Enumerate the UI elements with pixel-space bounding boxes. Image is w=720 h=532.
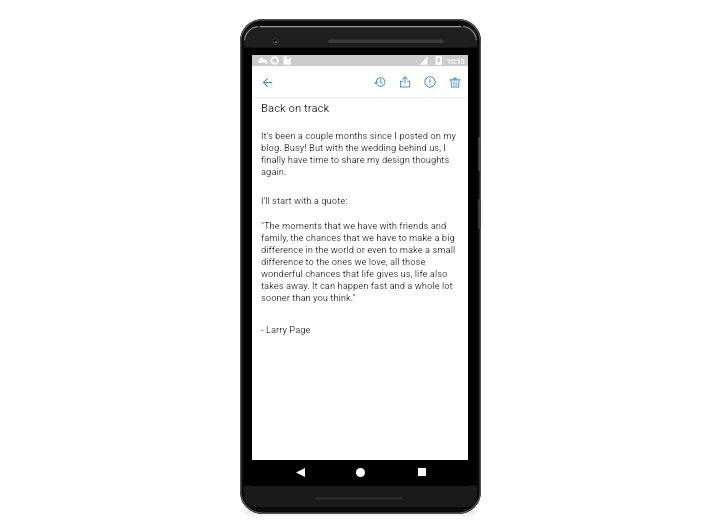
staticText: It's been a couple months since I posted… — [261, 129, 461, 177]
staticText: I'll start with a quote: — [261, 194, 348, 206]
staticText: Back on track — [261, 102, 330, 115]
button[interactable]: Share — [392, 69, 417, 94]
button[interactable]: Back — [253, 68, 281, 96]
button[interactable]: Delete — [442, 69, 467, 94]
button[interactable]: Recents — [402, 459, 442, 485]
button[interactable]: Info — [417, 69, 442, 94]
staticText: 10:13 — [447, 57, 465, 65]
button[interactable]: Back — [280, 459, 320, 485]
button[interactable]: Home — [340, 459, 380, 485]
staticText: - Larry Page — [261, 323, 311, 335]
button[interactable]: Restore — [367, 69, 392, 94]
staticText: "The moments that we have with friends a… — [261, 219, 461, 303]
